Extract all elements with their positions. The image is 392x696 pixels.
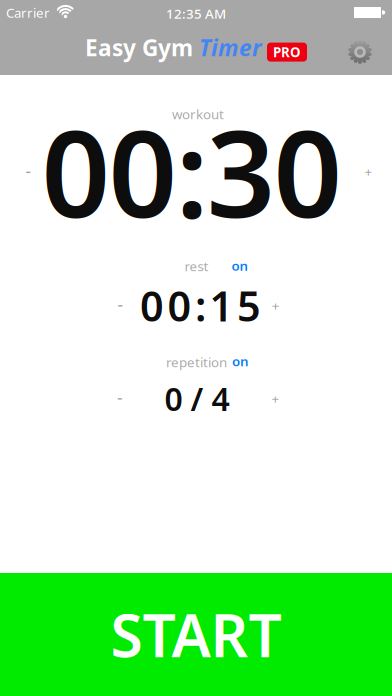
staticText: + (364, 163, 372, 180)
button[interactable]: Settings (348, 40, 372, 64)
staticText: - (25, 159, 31, 182)
staticText: + (272, 390, 280, 407)
staticText: on (232, 352, 249, 370)
staticText: 0 / 4 (164, 377, 229, 420)
staticText: 0 (167, 278, 191, 333)
button[interactable]: Increase rest time (272, 297, 280, 314)
button[interactable]: Decrease repetitions (117, 386, 123, 409)
staticText: 1 (209, 278, 233, 333)
staticText: repetition (166, 353, 227, 371)
staticText: rest (184, 257, 208, 275)
staticText: 12:35 AM (166, 5, 226, 22)
staticText: 5 (237, 278, 261, 333)
button[interactable]: Increase repetitions (272, 390, 280, 407)
button[interactable]: on (231, 257, 248, 274)
button[interactable]: Decrease workout time (25, 159, 31, 182)
button[interactable]: Decrease rest time (117, 293, 123, 316)
staticText: Carrier (6, 4, 50, 21)
staticText: START (110, 595, 281, 673)
staticText: + (272, 297, 280, 314)
button[interactable]: Increase workout time (364, 163, 372, 180)
staticText: Easy Gym (85, 32, 199, 62)
staticText: on (231, 257, 248, 274)
button[interactable]: START (0, 573, 392, 696)
staticText: workout (172, 105, 224, 123)
staticText: - (117, 293, 123, 316)
staticText: 00:30 (41, 91, 342, 251)
button[interactable]: on (232, 352, 249, 370)
staticText: : (195, 278, 206, 333)
staticText: 0 (140, 278, 164, 333)
staticText: - (117, 386, 123, 409)
staticText: PRO (273, 43, 301, 61)
staticText: Timer (199, 32, 262, 62)
